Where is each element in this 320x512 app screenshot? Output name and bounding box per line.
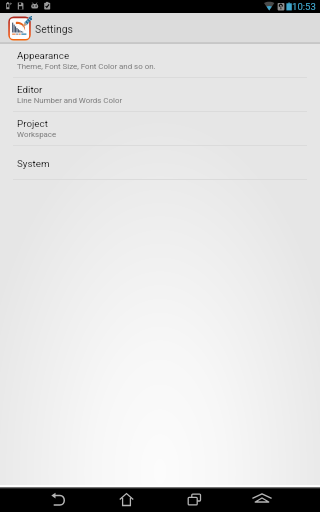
staticText: Appearance <box>17 50 70 61</box>
button[interactable]: Project <box>0 112 320 146</box>
staticText: Workspace <box>17 130 57 139</box>
staticText: Theme, Font Size, Font Color and so on. <box>17 62 156 71</box>
button[interactable]: Home <box>92 487 160 512</box>
staticText: Line Number and Words Color <box>17 96 123 105</box>
button[interactable]: Editor <box>0 78 320 112</box>
button[interactable]: Show menu <box>228 487 296 512</box>
staticText: System <box>17 158 50 169</box>
staticText: Project <box>17 118 48 129</box>
button[interactable]: System <box>0 146 320 180</box>
button[interactable]: Appearance <box>0 44 320 78</box>
staticText: Editor <box>17 84 43 95</box>
staticText: Settings <box>35 23 73 35</box>
button[interactable]: Recent apps <box>160 487 228 512</box>
button[interactable]: Settings <box>0 13 320 44</box>
staticText: 10:53 <box>292 1 316 12</box>
button[interactable]: Back <box>24 487 92 512</box>
